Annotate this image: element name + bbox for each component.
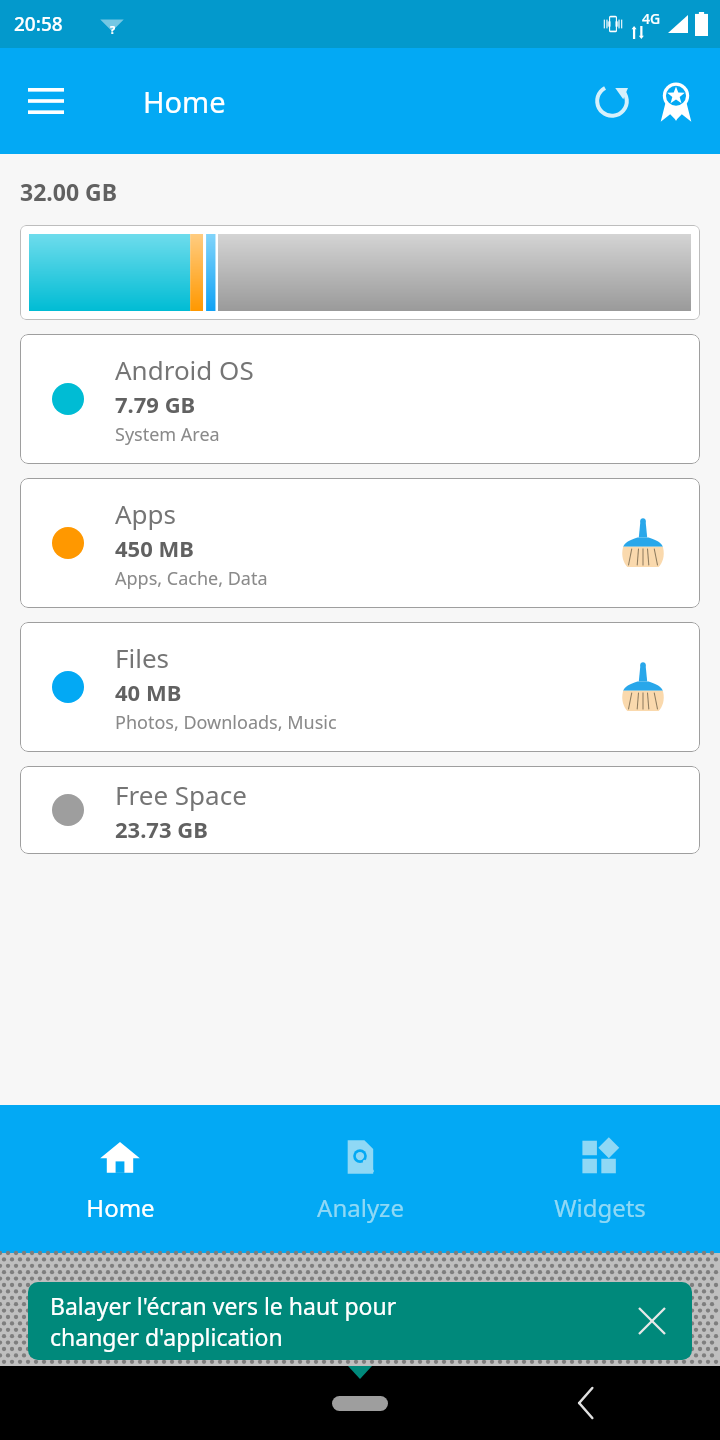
button[interactable]: Files — [20, 622, 700, 752]
button[interactable]: Apps — [20, 478, 700, 608]
staticText: Home — [86, 1191, 155, 1224]
staticText: Apps, Cache, Data — [115, 566, 268, 591]
button[interactable]: Analyze — [240, 1105, 480, 1253]
staticText: Free Space — [115, 777, 247, 812]
button[interactable]: Premium — [644, 69, 708, 133]
staticText: System Area — [115, 422, 220, 447]
staticText: Widgets — [554, 1191, 646, 1224]
staticText: 4G — [642, 9, 661, 28]
button[interactable]: Refresh — [580, 69, 644, 133]
button[interactable]: Free Space — [20, 766, 700, 854]
staticText: Android OS — [115, 352, 254, 387]
button[interactable]: Widgets — [480, 1105, 720, 1253]
staticText: 40 MB — [115, 677, 182, 707]
staticText: Files — [115, 640, 170, 675]
staticText: Apps — [115, 496, 177, 531]
staticText: Home — [143, 82, 226, 121]
staticText: 20:58 — [14, 11, 63, 37]
button[interactable]: Android OS — [20, 334, 700, 464]
button[interactable]: Back — [562, 1379, 610, 1427]
button[interactable]: Clean Files — [610, 654, 676, 720]
staticText: Balayer l'écran vers le haut pour change… — [50, 1290, 397, 1353]
button[interactable]: Home — [332, 1396, 388, 1411]
staticText: 7.79 GB — [115, 389, 196, 419]
staticText: 23.73 GB — [115, 814, 208, 844]
staticText: Analyze — [317, 1191, 404, 1224]
button[interactable]: Menu — [20, 75, 72, 127]
button[interactable]: Home — [0, 1105, 240, 1253]
staticText: ? — [110, 22, 116, 37]
button[interactable]: Close — [626, 1295, 678, 1347]
button[interactable]: Balayer l'écran vers le haut pour change… — [28, 1282, 692, 1360]
button[interactable] — [20, 225, 700, 320]
staticText: Photos, Downloads, Music — [115, 710, 337, 735]
staticText: 450 MB — [115, 533, 194, 563]
staticText: 32.00 GB — [20, 176, 118, 207]
button[interactable]: Clean Apps — [610, 510, 676, 576]
